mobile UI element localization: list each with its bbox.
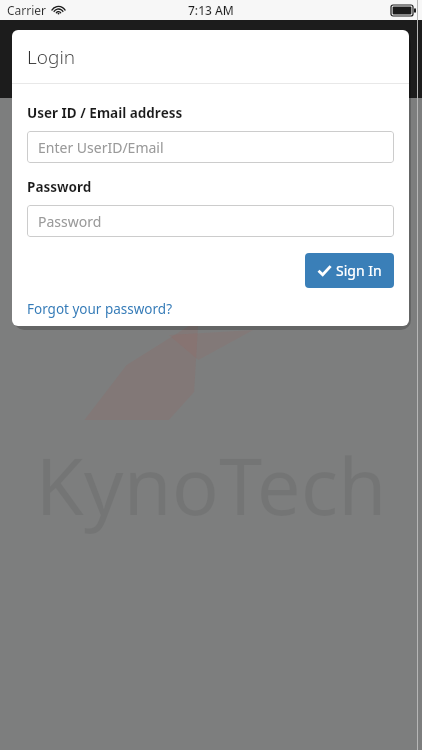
staticText: Password [27, 178, 92, 196]
button[interactable]: Enter UserID/Email [27, 131, 394, 163]
button[interactable]: Forgot your password? [27, 300, 173, 318]
staticText: Sign In [336, 261, 382, 280]
button[interactable]: Sign In [305, 253, 394, 288]
staticText: Password [38, 212, 102, 231]
staticText: User ID / Email address [27, 104, 183, 122]
button[interactable]: Password [27, 205, 394, 237]
staticText: Enter UserID/Email [38, 138, 164, 157]
staticText: 7:13 AM [188, 2, 234, 18]
staticText: Login [27, 44, 76, 70]
staticText: KynoTech [0, 432, 422, 538]
staticText: Carrier [7, 2, 47, 18]
